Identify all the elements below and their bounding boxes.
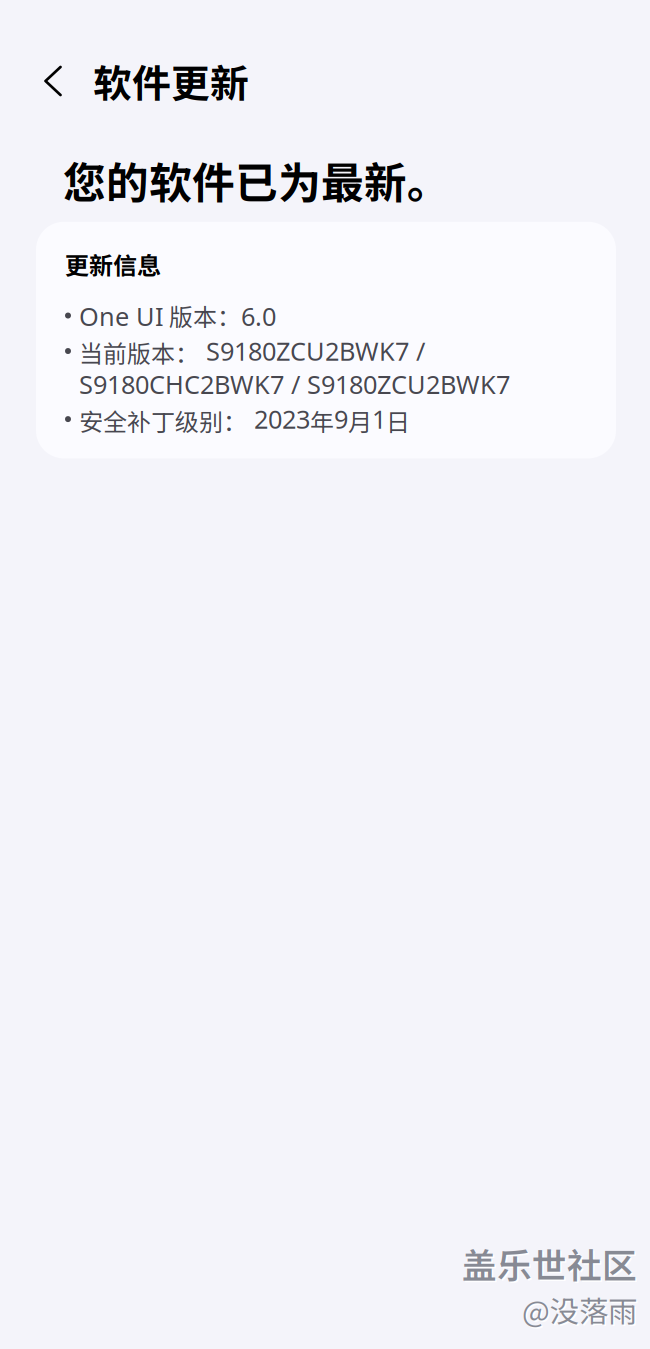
staticText: @没落雨 xyxy=(522,1288,637,1331)
staticText: 您的软件已为最新。 xyxy=(63,149,450,211)
staticText: 盖乐世社区 xyxy=(462,1238,637,1288)
staticText: One UI 版本：6.0 xyxy=(79,299,276,332)
button[interactable]: 返回 xyxy=(25,56,81,106)
staticText: 软件更新 xyxy=(93,53,249,109)
staticText: 当前版本： S9180ZCU2BWK7 / S9180CHC2BWK7 / S9… xyxy=(79,335,510,400)
staticText: 更新信息 xyxy=(65,247,161,282)
staticText: 安全补丁级别： 2023年9月1日 xyxy=(79,403,410,436)
